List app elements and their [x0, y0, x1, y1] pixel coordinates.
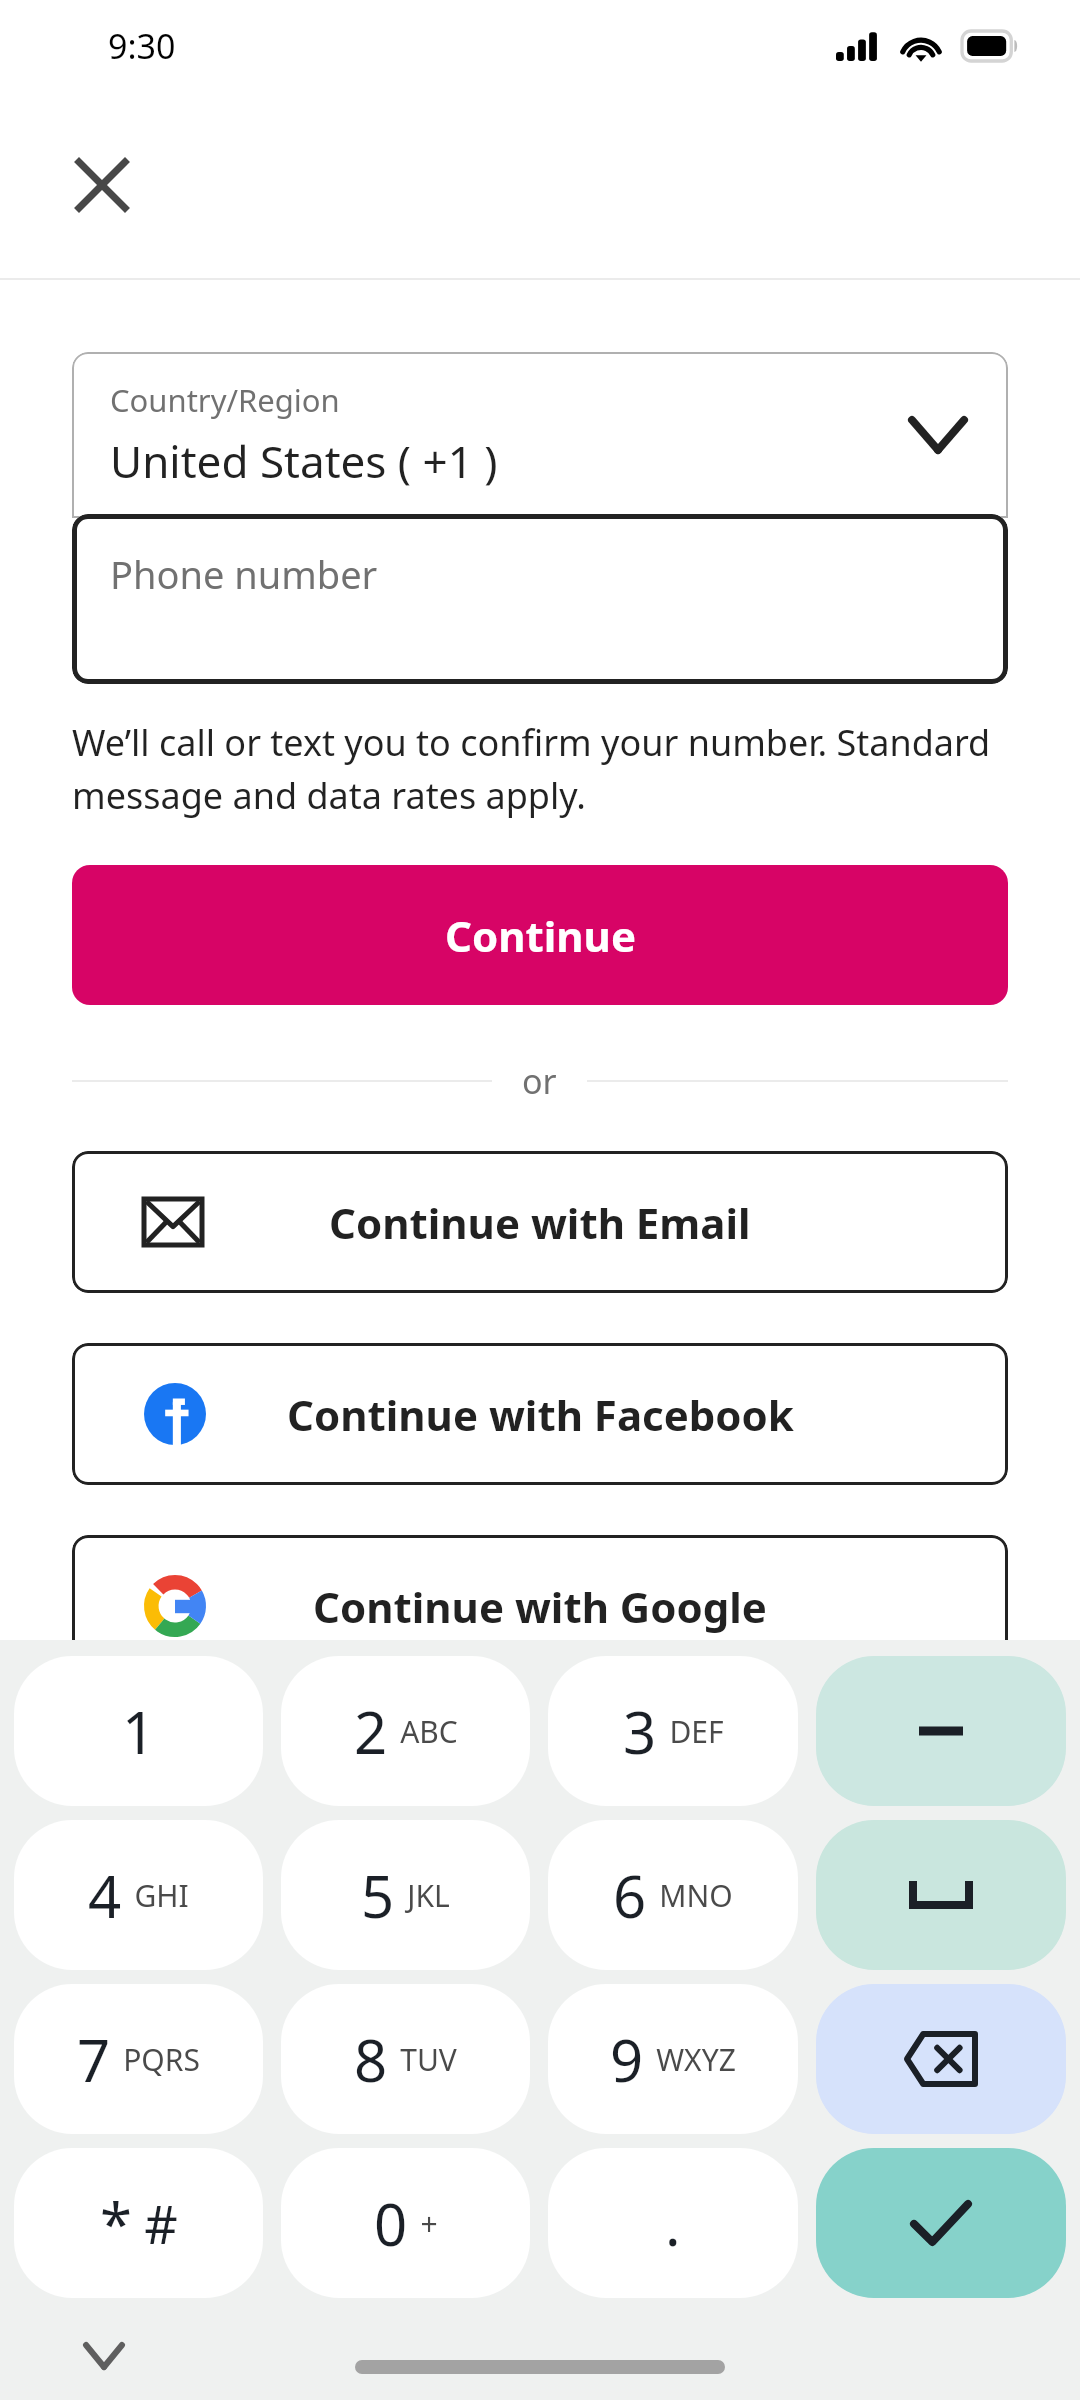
button[interactable]: 3: [548, 1656, 798, 1806]
staticText: 7: [77, 2020, 111, 2099]
button[interactable]: Space: [816, 1820, 1066, 1970]
button[interactable]: 5: [281, 1820, 530, 1970]
staticText: 3: [623, 1692, 657, 1771]
staticText: #: [144, 2188, 178, 2259]
button[interactable]: Dash: [816, 1656, 1066, 1806]
staticText: TUV: [400, 2039, 457, 2080]
button[interactable]: Close: [60, 143, 144, 227]
button[interactable]: .: [548, 2148, 798, 2298]
button[interactable]: Backspace: [816, 1984, 1066, 2134]
staticText: PQRS: [123, 2039, 200, 2080]
button[interactable]: Continue with Google: [72, 1535, 1008, 1677]
button[interactable]: 8: [281, 1984, 530, 2134]
staticText: DEF: [669, 1711, 724, 1752]
button[interactable]: 4: [14, 1820, 263, 1970]
button[interactable]: 0: [281, 2148, 530, 2298]
button[interactable]: *: [14, 2148, 263, 2298]
button[interactable]: Continue with Email: [72, 1151, 1008, 1293]
staticText: Continue with Google: [313, 1578, 767, 1635]
staticText: 6: [613, 1856, 647, 1935]
staticText: Phone number: [110, 548, 378, 600]
staticText: or: [522, 1058, 557, 1104]
staticText: WXYZ: [656, 2039, 736, 2080]
staticText: 4: [88, 1856, 122, 1935]
staticText: ABC: [400, 1711, 458, 1752]
staticText: 9:30: [108, 23, 176, 69]
button[interactable]: 7: [14, 1984, 263, 2134]
staticText: Continue with Email: [329, 1194, 751, 1251]
staticText: 5: [361, 1856, 395, 1935]
staticText: We’ll call or text you to confirm your n…: [72, 718, 1008, 819]
button[interactable]: Country/Region: [72, 352, 1008, 518]
staticText: GHI: [134, 1875, 189, 1916]
button[interactable]: Hide keyboard: [66, 2318, 142, 2394]
staticText: 2: [354, 1692, 388, 1771]
button[interactable]: 2: [281, 1656, 530, 1806]
staticText: Country/Region: [110, 379, 340, 421]
button[interactable]: Continue: [72, 865, 1008, 1005]
staticText: 8: [354, 2020, 388, 2099]
staticText: Continue with Facebook: [287, 1386, 794, 1443]
staticText: JKL: [407, 1875, 450, 1916]
button[interactable]: 9: [548, 1984, 798, 2134]
button[interactable]: Continue with Facebook: [72, 1343, 1008, 1485]
button[interactable]: Done: [816, 2148, 1066, 2298]
staticText: United States ( +1 ): [110, 431, 498, 491]
staticText: Continue: [445, 907, 636, 964]
button[interactable]: Phone number: [72, 514, 1008, 684]
button[interactable]: 1: [14, 1656, 263, 1806]
staticText: .: [665, 2184, 681, 2263]
staticText: +: [420, 2203, 438, 2244]
staticText: 0: [374, 2184, 408, 2263]
button[interactable]: 6: [548, 1820, 798, 1970]
staticText: *: [100, 2184, 132, 2263]
staticText: MNO: [659, 1875, 733, 1916]
staticText: 9: [610, 2020, 644, 2099]
staticText: 1: [122, 1692, 156, 1771]
